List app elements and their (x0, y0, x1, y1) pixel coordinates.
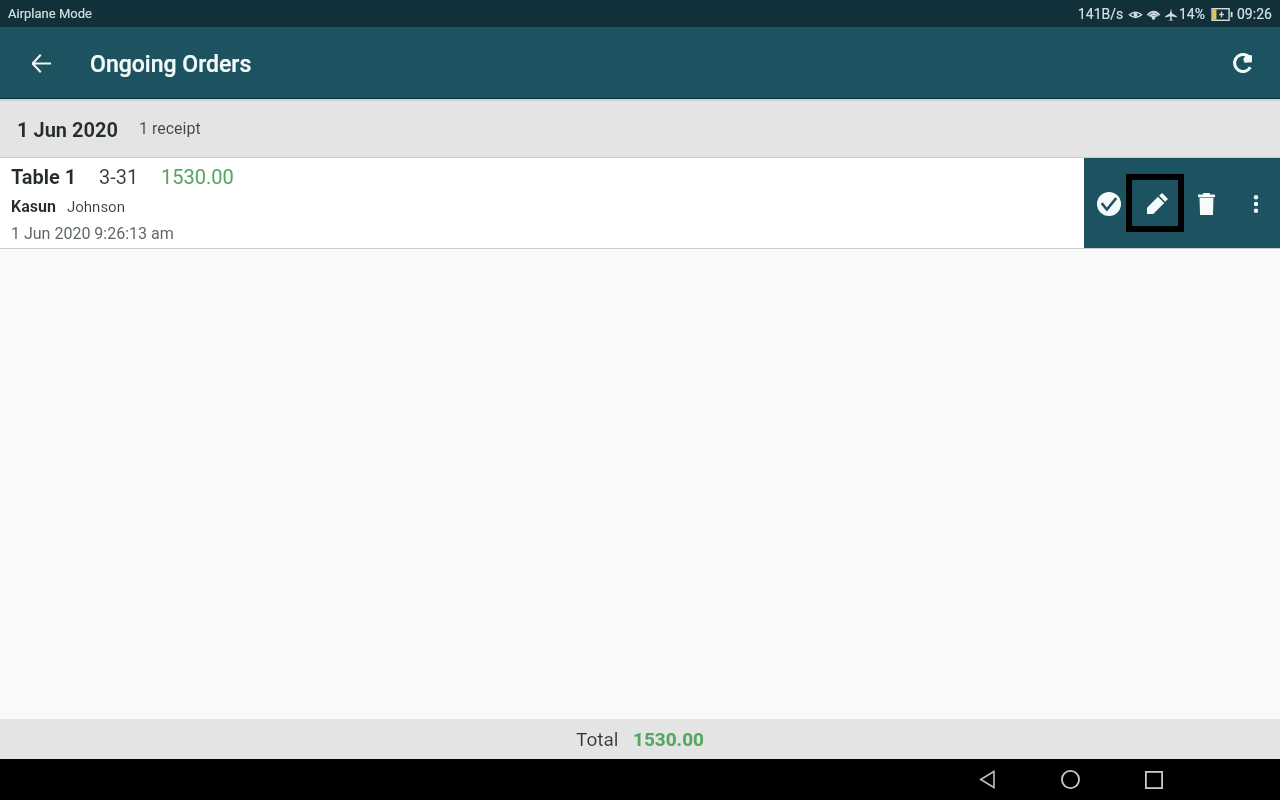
staticText: 1 receipt (139, 119, 201, 138)
staticText: Johnson (67, 198, 125, 216)
staticText: Total (576, 728, 619, 750)
staticText: Table 1 (11, 165, 77, 188)
staticText: Airplane Mode (8, 6, 92, 21)
button[interactable]: Complete order (1085, 180, 1132, 227)
button[interactable]: More options (1232, 180, 1279, 227)
button[interactable]: Home (1029, 759, 1112, 800)
button[interactable]: Table 1 (0, 158, 1084, 248)
button[interactable]: Back (946, 759, 1029, 800)
button[interactable]: Recents (1112, 759, 1195, 800)
button[interactable]: Delete order (1183, 180, 1230, 227)
staticText: 14% (1179, 6, 1205, 22)
staticText: 3-31 (99, 165, 139, 188)
staticText: 1 Jun 2020 9:26:13 am (11, 224, 174, 243)
staticText: 1530.00 (633, 728, 704, 750)
button[interactable]: Refresh (1219, 39, 1267, 87)
staticText: Kasun (11, 197, 56, 216)
staticText: Ongoing Orders (90, 51, 252, 78)
staticText: 1 Jun 2020 (17, 118, 118, 141)
button[interactable]: Back (17, 39, 65, 87)
staticText: 1530.00 (161, 165, 234, 188)
button[interactable]: Edit order (1126, 174, 1184, 232)
staticText: 141B/s (1078, 6, 1124, 22)
staticText: 09:26 (1237, 6, 1272, 22)
